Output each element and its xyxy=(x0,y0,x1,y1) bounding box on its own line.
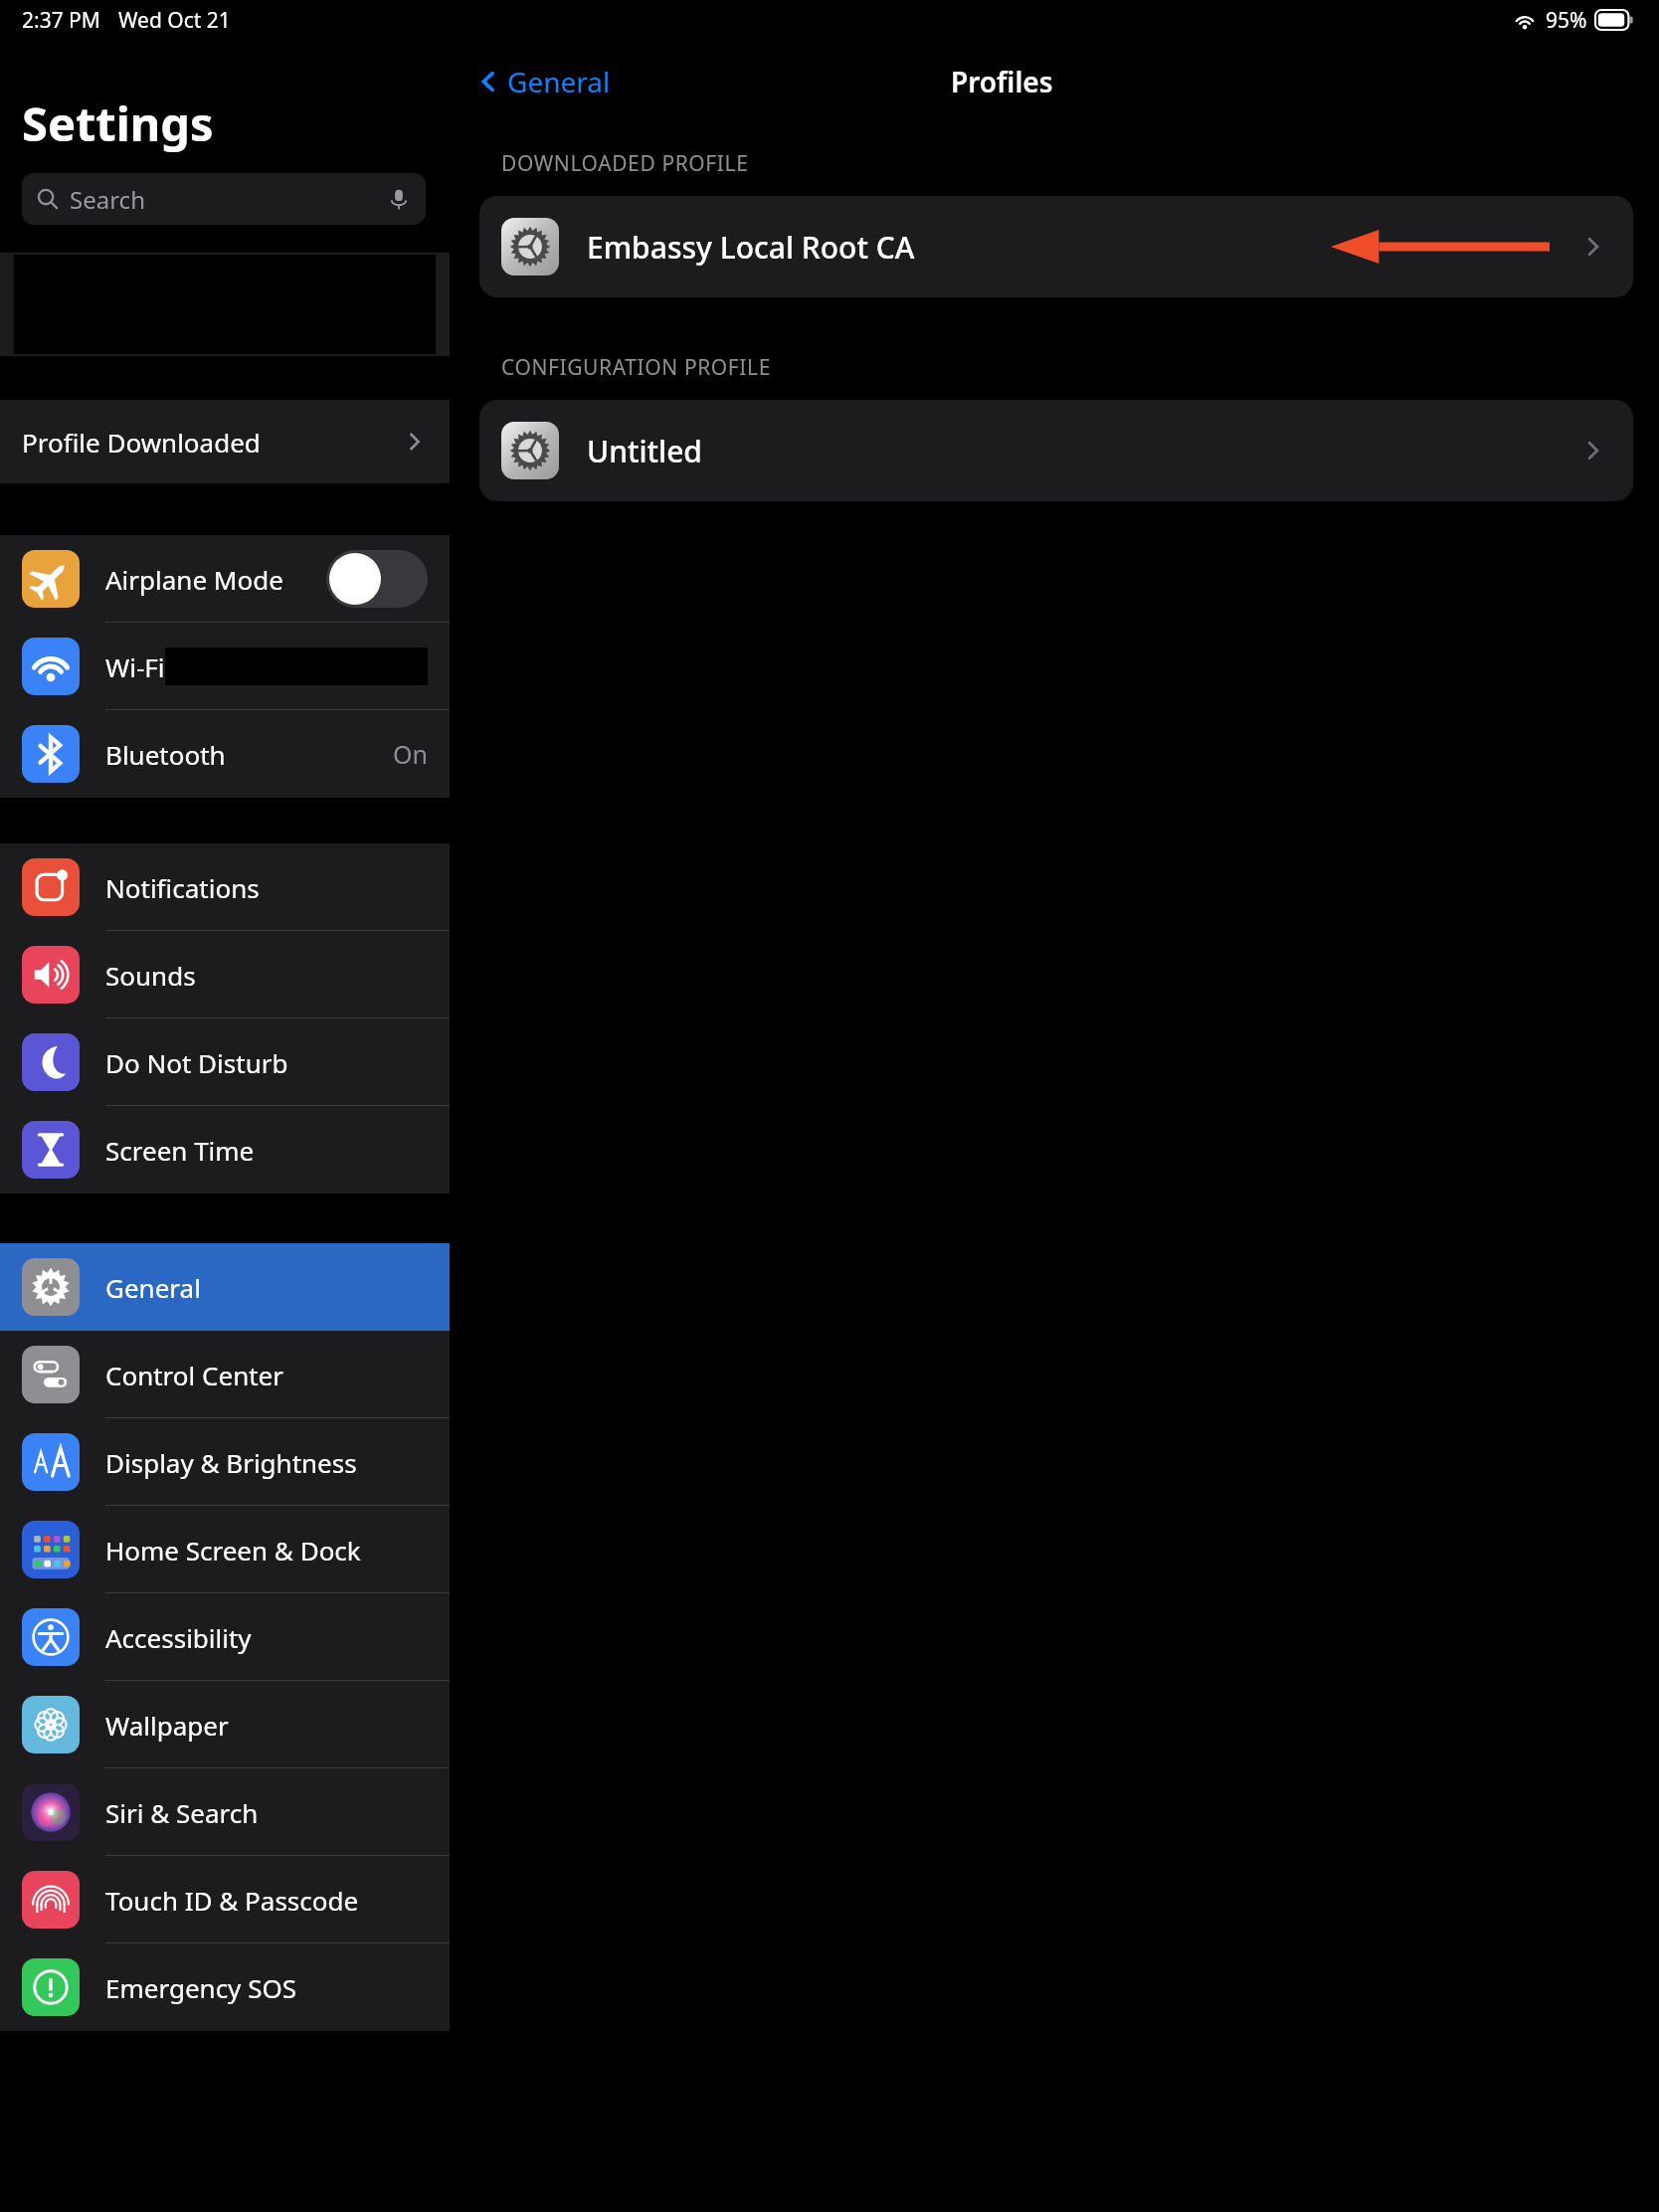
staticText: 95% xyxy=(1546,6,1587,35)
button[interactable]: Do Not Disturb xyxy=(0,1018,450,1106)
button[interactable]: Bluetooth xyxy=(0,710,450,798)
staticText: Siri & Search xyxy=(105,1795,259,1830)
button[interactable]: General xyxy=(469,57,617,106)
staticText: Control Center xyxy=(105,1358,283,1392)
button[interactable]: Wallpaper xyxy=(0,1681,450,1768)
staticText: Notifications xyxy=(105,870,260,905)
button[interactable]: Airplane Mode toggle xyxy=(326,550,428,608)
staticText: CONFIGURATION PROFILE xyxy=(501,353,771,382)
staticText: On xyxy=(393,737,428,771)
staticText: Emergency SOS xyxy=(105,1970,296,2005)
staticText: Profile Downloaded xyxy=(22,425,261,460)
staticText: Wi-Fi xyxy=(105,649,165,684)
button[interactable]: Wi-Fi xyxy=(0,623,450,710)
button[interactable]: Sounds xyxy=(0,931,450,1018)
button[interactable]: Airplane Mode xyxy=(0,535,450,623)
button[interactable]: Control Center xyxy=(0,1331,450,1418)
button[interactable]: Emergency SOS xyxy=(0,1943,450,2031)
button[interactable]: Notifications xyxy=(0,843,450,931)
button[interactable]: Display & Brightness xyxy=(0,1418,450,1506)
staticText: Display & Brightness xyxy=(105,1445,357,1480)
button[interactable]: Profile Downloaded xyxy=(0,400,450,483)
button[interactable]: Siri & Search xyxy=(0,1768,450,1856)
staticText: Do Not Disturb xyxy=(105,1045,288,1080)
staticText: Bluetooth xyxy=(105,737,226,772)
staticText: Sounds xyxy=(105,958,196,993)
staticText: 2:37 PM xyxy=(22,6,100,35)
staticText: Airplane Mode xyxy=(105,562,283,597)
button[interactable]: Untitled xyxy=(479,400,1633,501)
button[interactable]: Accessibility xyxy=(0,1593,450,1681)
staticText: Accessibility xyxy=(105,1620,252,1655)
staticText: Touch ID & Passcode xyxy=(105,1883,359,1918)
staticText: General xyxy=(105,1270,201,1305)
button[interactable]: Home Screen & Dock xyxy=(0,1506,450,1593)
button[interactable]: Touch ID & Passcode xyxy=(0,1856,450,1943)
button[interactable]: General xyxy=(0,1243,450,1331)
staticText: Untitled xyxy=(587,431,702,471)
button[interactable]: Search xyxy=(22,173,426,225)
staticText: Embassy Local Root CA xyxy=(587,227,915,268)
staticText: Wallpaper xyxy=(105,1708,229,1743)
staticText: General xyxy=(507,63,611,100)
button[interactable]: Screen Time xyxy=(0,1106,450,1194)
staticText: Screen Time xyxy=(105,1133,255,1168)
button[interactable]: Embassy Local Root CA xyxy=(479,196,1633,297)
staticText: DOWNLOADED PROFILE xyxy=(501,149,749,178)
staticText: Settings xyxy=(22,92,214,155)
staticText: Profiles xyxy=(951,63,1053,100)
staticText: Search xyxy=(70,183,145,216)
staticText: Wed Oct 21 xyxy=(118,6,231,35)
staticText: Home Screen & Dock xyxy=(105,1533,361,1567)
